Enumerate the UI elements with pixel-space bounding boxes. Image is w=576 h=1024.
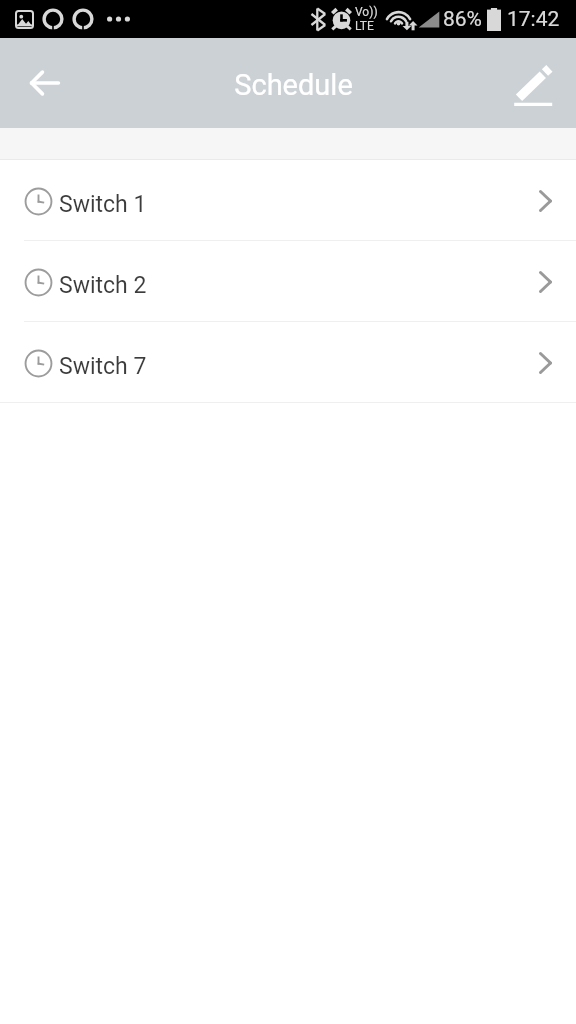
staticText: Schedule <box>234 68 353 102</box>
button[interactable]: Switch 2 <box>0 241 576 322</box>
button[interactable]: Switch 7 <box>0 322 576 403</box>
staticText: 86% <box>443 7 482 32</box>
staticText: Switch 1 <box>59 191 147 218</box>
staticText: Switch 2 <box>59 272 147 299</box>
staticText: 17:42 <box>507 7 560 32</box>
button[interactable]: Back <box>15 53 75 113</box>
staticText: LTE <box>355 19 374 33</box>
staticText: Vo)) <box>355 5 378 19</box>
staticText: Switch 7 <box>59 353 147 380</box>
button[interactable]: Edit <box>503 57 563 117</box>
button[interactable]: Switch 1 <box>0 160 576 241</box>
